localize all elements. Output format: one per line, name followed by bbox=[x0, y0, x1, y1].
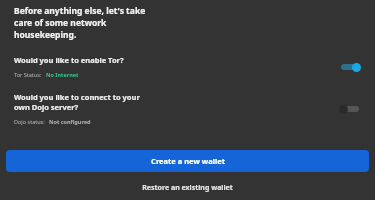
staticText: Would you like to enable Tor? bbox=[14, 55, 124, 65]
staticText: Not configured bbox=[49, 118, 91, 125]
button[interactable]: Connect to Dojo server bbox=[337, 102, 363, 116]
staticText: own Dojo server? bbox=[14, 102, 79, 112]
staticText: Tor Status: bbox=[14, 71, 42, 78]
button[interactable]: Restore an existing wallet bbox=[0, 180, 375, 196]
staticText: Create a new wallet bbox=[151, 156, 225, 166]
staticText: Would you like to connect to your bbox=[14, 92, 140, 102]
staticText: Dojo status: bbox=[14, 118, 45, 125]
staticText: Restore an existing wallet bbox=[142, 183, 233, 193]
staticText: housekeeping. bbox=[14, 29, 77, 41]
staticText: care of some network bbox=[14, 17, 107, 29]
staticText: Before anything else, let's take bbox=[14, 5, 146, 17]
button[interactable]: Enable Tor bbox=[337, 60, 363, 74]
staticText: No Internet bbox=[46, 71, 79, 78]
button[interactable]: Create a new wallet bbox=[6, 150, 369, 172]
